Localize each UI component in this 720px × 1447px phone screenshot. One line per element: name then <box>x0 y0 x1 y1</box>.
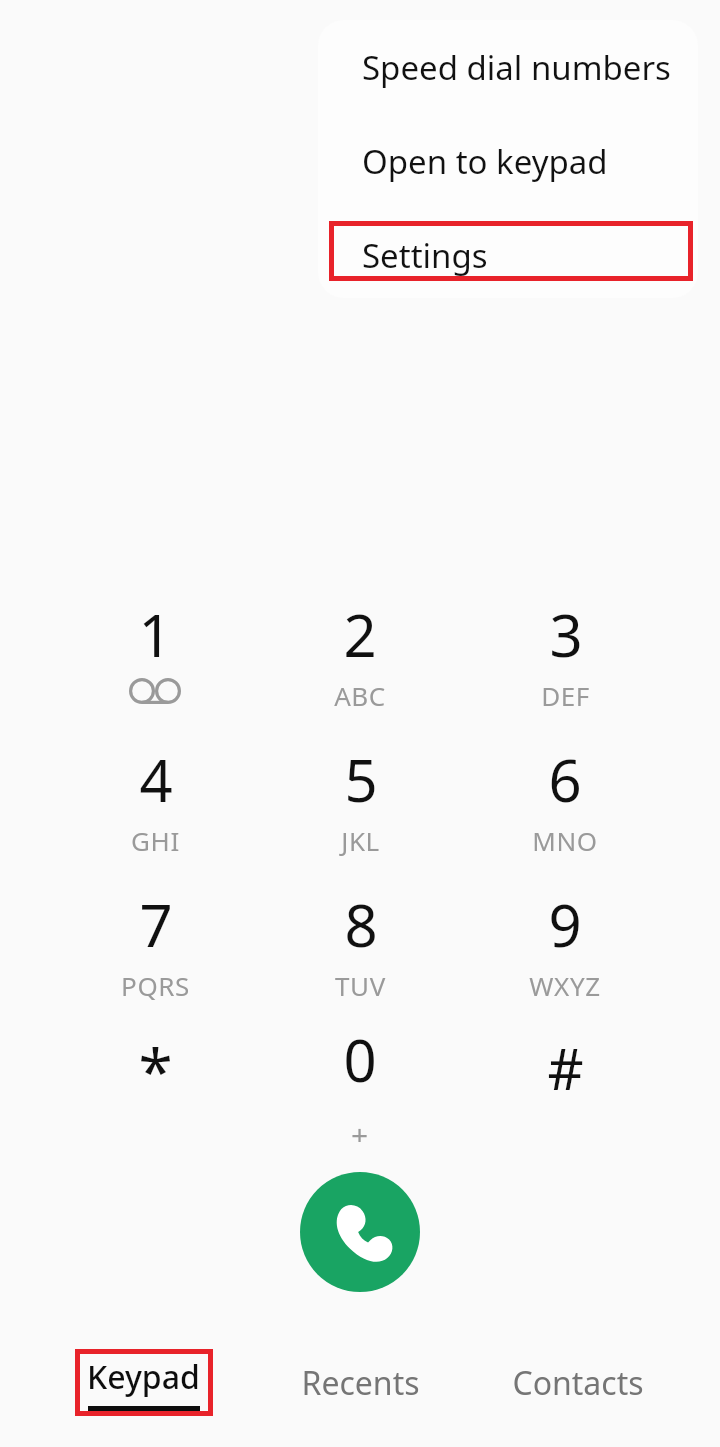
staticText: 8 <box>344 885 378 964</box>
button[interactable]: Open to keypad <box>318 114 698 208</box>
button[interactable]: * <box>65 1010 245 1142</box>
button[interactable]: 8 <box>270 875 450 1007</box>
staticText: PQRS <box>121 968 190 1003</box>
staticText: Settings <box>362 233 488 278</box>
staticText: 7 <box>139 885 173 964</box>
staticText: # <box>547 1030 584 1106</box>
staticText: WXYZ <box>529 968 601 1003</box>
button[interactable]: 9 <box>475 875 655 1007</box>
staticText: DEF <box>541 678 590 713</box>
button[interactable]: Call <box>300 1172 420 1292</box>
staticText: + <box>351 1115 369 1142</box>
button[interactable]: 0 <box>270 1010 450 1142</box>
staticText: JKL <box>341 823 380 858</box>
button[interactable]: Recents <box>260 1345 460 1421</box>
button[interactable]: # <box>475 1010 655 1142</box>
staticText: MNO <box>532 823 598 858</box>
staticText: * <box>138 1028 173 1112</box>
staticText: ABC <box>334 678 386 713</box>
staticText: Keypad <box>87 1355 200 1399</box>
staticText: Speed dial numbers <box>362 45 671 90</box>
staticText: 5 <box>344 740 378 819</box>
staticText: GHI <box>131 823 180 858</box>
button[interactable]: 6 <box>475 730 655 862</box>
staticText: 3 <box>549 595 583 674</box>
staticText: 9 <box>548 885 582 964</box>
staticText: Contacts <box>512 1361 644 1405</box>
staticText: 4 <box>139 740 173 819</box>
button[interactable]: Contacts <box>478 1345 678 1421</box>
button[interactable]: Keypad <box>63 1345 223 1421</box>
button[interactable]: 5 <box>270 730 450 862</box>
button[interactable]: 3 <box>475 585 655 717</box>
button[interactable]: 2 <box>270 585 450 717</box>
staticText: 2 <box>343 595 377 674</box>
staticText: Open to keypad <box>362 139 608 184</box>
staticText: 0 <box>343 1020 377 1099</box>
button[interactable]: Settings <box>318 208 698 298</box>
button[interactable]: Speed dial numbers <box>318 20 698 114</box>
staticText: 1 <box>138 595 172 674</box>
staticText: TUV <box>335 968 386 1003</box>
button[interactable]: 7 <box>65 875 245 1007</box>
button[interactable]: 4 <box>65 730 245 862</box>
button[interactable]: 1 <box>65 585 245 717</box>
staticText: 6 <box>548 740 582 819</box>
staticText: Recents <box>301 1361 420 1405</box>
